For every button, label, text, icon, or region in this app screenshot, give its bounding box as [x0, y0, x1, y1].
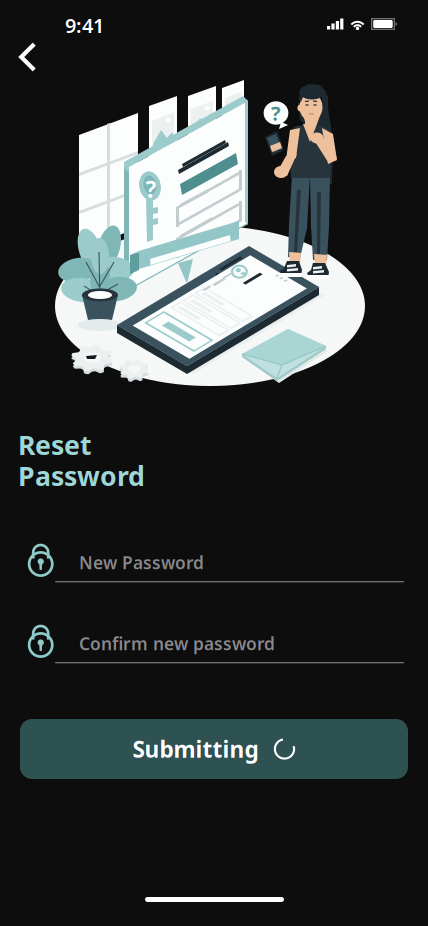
button[interactable]: Back	[0, 32, 56, 82]
staticText: ?	[271, 100, 281, 126]
staticText: Password	[18, 458, 145, 493]
staticText: New Password	[79, 551, 204, 574]
staticText: ?	[145, 174, 156, 204]
staticText: Reset	[18, 427, 92, 462]
staticText: 9:41	[65, 12, 104, 39]
staticText: Confirm new password	[79, 632, 275, 655]
button[interactable]: Submitting	[20, 719, 408, 779]
staticText: Submitting	[132, 734, 258, 764]
